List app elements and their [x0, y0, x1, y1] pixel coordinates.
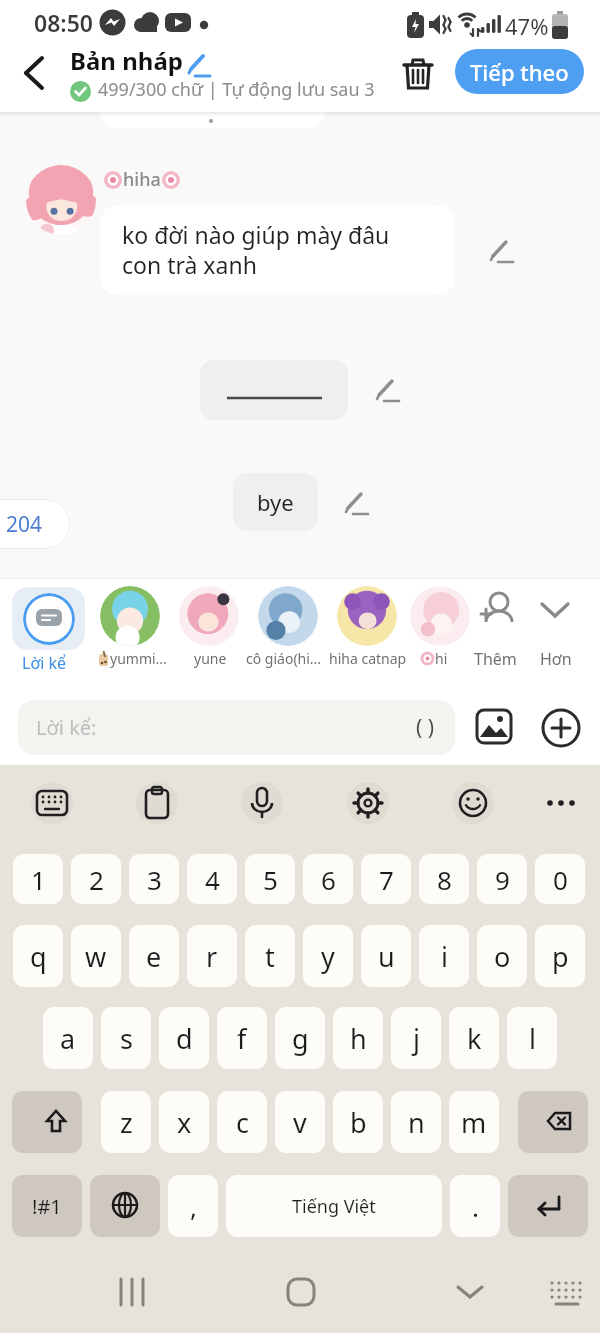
button[interactable]: b	[333, 1091, 383, 1153]
staticText: d	[176, 1020, 193, 1057]
button[interactable]	[22, 56, 48, 90]
staticText: k	[467, 1020, 482, 1057]
staticText: m	[461, 1104, 487, 1141]
button[interactable]: 7	[361, 854, 411, 904]
button[interactable]	[488, 238, 515, 265]
button[interactable]	[508, 1175, 588, 1237]
button[interactable]: Tiếp theo	[455, 49, 584, 94]
staticText: c	[236, 1104, 249, 1141]
button[interactable]: k	[449, 1007, 499, 1069]
button[interactable]: Lời kể	[22, 652, 67, 674]
button[interactable]: s	[101, 1007, 151, 1069]
button[interactable]	[118, 1277, 148, 1307]
button[interactable]: m	[449, 1091, 499, 1153]
button[interactable]: 204	[0, 499, 70, 549]
button[interactable]	[518, 1091, 588, 1153]
button[interactable]: q	[13, 925, 63, 987]
button[interactable]	[477, 592, 515, 630]
staticText: h	[350, 1020, 367, 1057]
staticText: 499/300 chữ | Tự động lưu sau 3:	[98, 77, 376, 102]
button[interactable]: 6	[303, 854, 353, 904]
button[interactable]	[186, 52, 212, 78]
button[interactable]	[179, 586, 239, 646]
button[interactable]	[538, 600, 572, 622]
button[interactable]: l	[507, 1007, 557, 1069]
button[interactable]: Lời kể:	[18, 700, 455, 755]
staticText: w	[85, 938, 107, 975]
button[interactable]	[286, 1277, 316, 1307]
button[interactable]: 2	[71, 854, 121, 904]
button[interactable]	[12, 587, 85, 650]
button[interactable]: g	[275, 1007, 325, 1069]
staticText: 3	[147, 862, 162, 897]
button[interactable]	[548, 1279, 586, 1307]
button[interactable]	[31, 782, 73, 824]
staticText: p	[552, 938, 569, 975]
button[interactable]: d	[159, 1007, 209, 1069]
button[interactable]: .	[450, 1175, 500, 1237]
staticText: hiha	[123, 167, 161, 192]
button[interactable]: bye	[233, 473, 318, 531]
button[interactable]	[410, 586, 470, 646]
staticText: 7	[379, 862, 394, 897]
button[interactable]	[452, 782, 494, 824]
button[interactable]	[12, 1091, 82, 1153]
button[interactable]: p	[535, 925, 585, 987]
button[interactable]: x	[159, 1091, 209, 1153]
staticText: f	[237, 1020, 247, 1057]
button[interactable]	[200, 360, 348, 420]
button[interactable]: z	[101, 1091, 151, 1153]
button[interactable]: t	[245, 925, 295, 987]
button[interactable]: Hơn	[540, 648, 572, 670]
button[interactable]: i	[419, 925, 469, 987]
button[interactable]	[545, 796, 581, 810]
button[interactable]: 4	[187, 854, 237, 904]
button[interactable]	[374, 377, 401, 404]
staticText: 6	[321, 862, 336, 897]
button[interactable]	[476, 709, 514, 745]
staticText: z	[120, 1104, 133, 1141]
button[interactable]: f	[217, 1007, 267, 1069]
button[interactable]: e	[129, 925, 179, 987]
button[interactable]: h	[333, 1007, 383, 1069]
button[interactable]: a	[43, 1007, 93, 1069]
staticText: g	[292, 1020, 309, 1057]
button[interactable]: Thêm	[474, 648, 517, 670]
button[interactable]: o	[477, 925, 527, 987]
button[interactable]: 0	[535, 854, 585, 904]
staticText: x	[177, 1104, 192, 1141]
staticText: 0	[553, 862, 568, 897]
button[interactable]: ko đời nào giúp mày đâu con trà xanh	[100, 205, 455, 295]
button[interactable]: 1	[13, 854, 63, 904]
button[interactable]	[258, 586, 318, 646]
button[interactable]	[400, 57, 436, 93]
button[interactable]: j	[391, 1007, 441, 1069]
button[interactable]: y	[303, 925, 353, 987]
button[interactable]	[100, 586, 160, 646]
button[interactable]	[337, 586, 397, 646]
button[interactable]: w	[71, 925, 121, 987]
button[interactable]: c	[217, 1091, 267, 1153]
button[interactable]: ,	[168, 1175, 218, 1237]
button[interactable]: 9	[477, 854, 527, 904]
button[interactable]: Tiếng Việt	[226, 1175, 442, 1237]
button[interactable]	[541, 708, 581, 748]
button[interactable]	[455, 1283, 485, 1301]
button[interactable]	[347, 782, 389, 824]
staticText: q	[30, 938, 47, 975]
staticText: Lời kể:	[36, 714, 97, 741]
button[interactable]	[343, 490, 370, 517]
button[interactable]: n	[391, 1091, 441, 1153]
button[interactable]: 5	[245, 854, 295, 904]
button[interactable]	[241, 782, 283, 824]
button[interactable]	[136, 782, 178, 824]
staticText: 4	[205, 862, 220, 897]
button[interactable]	[90, 1175, 160, 1237]
button[interactable]: u	[361, 925, 411, 987]
button[interactable]: !#1	[12, 1175, 82, 1237]
button[interactable]: r	[187, 925, 237, 987]
button[interactable]: 8	[419, 854, 469, 904]
staticText: j	[413, 1020, 420, 1057]
button[interactable]: 3	[129, 854, 179, 904]
button[interactable]: v	[275, 1091, 325, 1153]
